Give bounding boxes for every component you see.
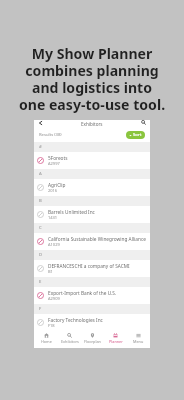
staticText: A2909 [48, 296, 60, 301]
button[interactable]: Factory Technologies Inc [34, 314, 150, 331]
staticText: B [39, 198, 42, 204]
staticText: A [39, 171, 42, 177]
staticText: California Sustainable Winegrowing Allia… [48, 236, 146, 242]
staticText: DEFRANCESCHI a company of SACMI [48, 263, 130, 269]
button[interactable]: Sort [126, 131, 145, 139]
staticText: Exhibitors [61, 339, 79, 344]
staticText: Home [41, 339, 52, 344]
staticText: Factory Technologies Inc [48, 317, 103, 323]
staticText: Floorplan [84, 339, 101, 344]
staticText: # [39, 144, 42, 150]
staticText: F18 [48, 323, 55, 328]
button[interactable]: Barrels Unlimited Inc [34, 206, 150, 223]
staticText: F [39, 306, 42, 312]
staticText: 2016 [48, 188, 58, 193]
staticText: Export-Import Bank of the U.S. [48, 290, 117, 296]
staticText: A2997 [48, 161, 60, 166]
button[interactable]: 5Foreots [34, 152, 150, 169]
button[interactable]: Floorplan [81, 331, 104, 348]
staticText: Exhibitors [81, 121, 103, 127]
staticText: B1 [48, 269, 53, 274]
button[interactable]: Search [137, 120, 150, 128]
button[interactable]: Back [34, 120, 47, 128]
staticText: Menu [133, 339, 144, 344]
staticText: E [39, 279, 42, 285]
button[interactable]: California Sustainable Winegrowing Allia… [34, 233, 150, 250]
staticText: 5Foreots [48, 155, 68, 161]
button[interactable]: DEFRANCESCHI a company of SACMI [34, 260, 150, 277]
staticText: 1431 [48, 215, 58, 220]
staticText: Sort [133, 132, 142, 138]
button[interactable]: Menu [127, 331, 150, 348]
button[interactable]: Exhibitors [58, 331, 81, 348]
staticText: Planner [109, 339, 123, 344]
button[interactable]: Planner [104, 331, 127, 348]
button[interactable]: Home [34, 331, 58, 348]
staticText: D [39, 252, 43, 258]
staticText: Results (38) [39, 132, 62, 138]
button[interactable]: Export-Import Bank of the U.S. [34, 287, 150, 304]
staticText: Barrels Unlimited Inc [48, 209, 95, 215]
staticText: C [39, 225, 42, 231]
staticText: A1029 [48, 242, 60, 247]
staticText: AgriClip [48, 182, 66, 188]
staticText: My Show Planner combines planning and lo… [0, 44, 184, 114]
button[interactable]: AgriClip [34, 179, 150, 196]
